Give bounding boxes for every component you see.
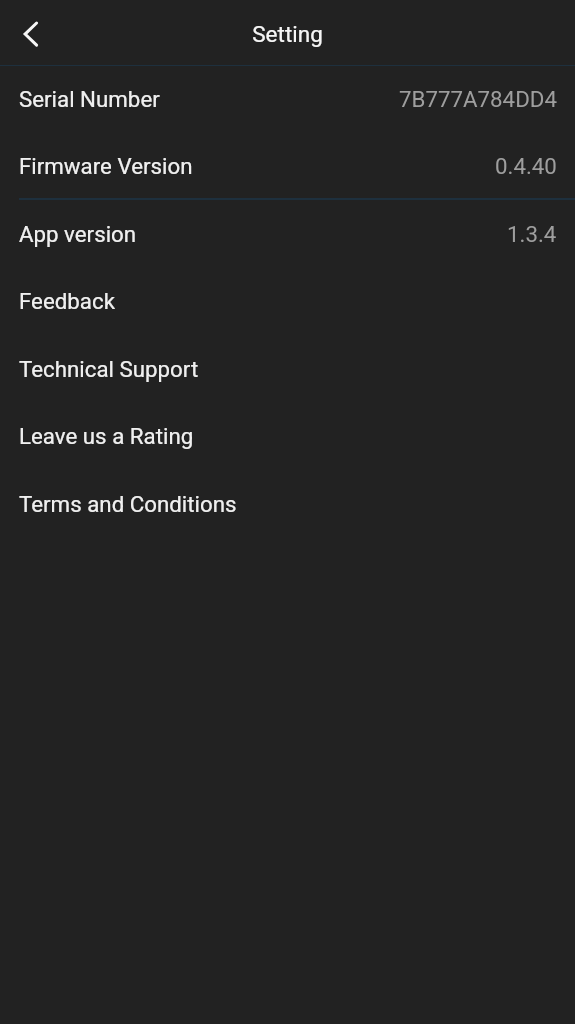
button[interactable]: Feedback <box>0 267 575 335</box>
staticText: Serial Number <box>19 86 160 112</box>
staticText: Leave us a Rating <box>19 423 194 449</box>
staticText: 7B777A784DD4 <box>399 86 557 112</box>
button[interactable]: Terms and Conditions <box>0 470 575 538</box>
button[interactable]: Leave us a Rating <box>0 402 575 470</box>
staticText: Setting <box>252 21 323 47</box>
staticText: Terms and Conditions <box>19 491 237 517</box>
staticText: 1.3.4 <box>507 221 557 247</box>
button[interactable]: Serial Number <box>0 65 575 133</box>
staticText: Firmware Version <box>19 153 193 179</box>
staticText: 0.4.40 <box>495 153 557 179</box>
staticText: Feedback <box>19 288 115 314</box>
button[interactable]: Technical Support <box>0 335 575 403</box>
staticText: Technical Support <box>19 356 199 382</box>
button[interactable]: Firmware Version <box>0 132 575 200</box>
button[interactable]: App version <box>0 200 575 268</box>
staticText: App version <box>19 221 137 247</box>
button[interactable]: Back <box>8 11 54 57</box>
